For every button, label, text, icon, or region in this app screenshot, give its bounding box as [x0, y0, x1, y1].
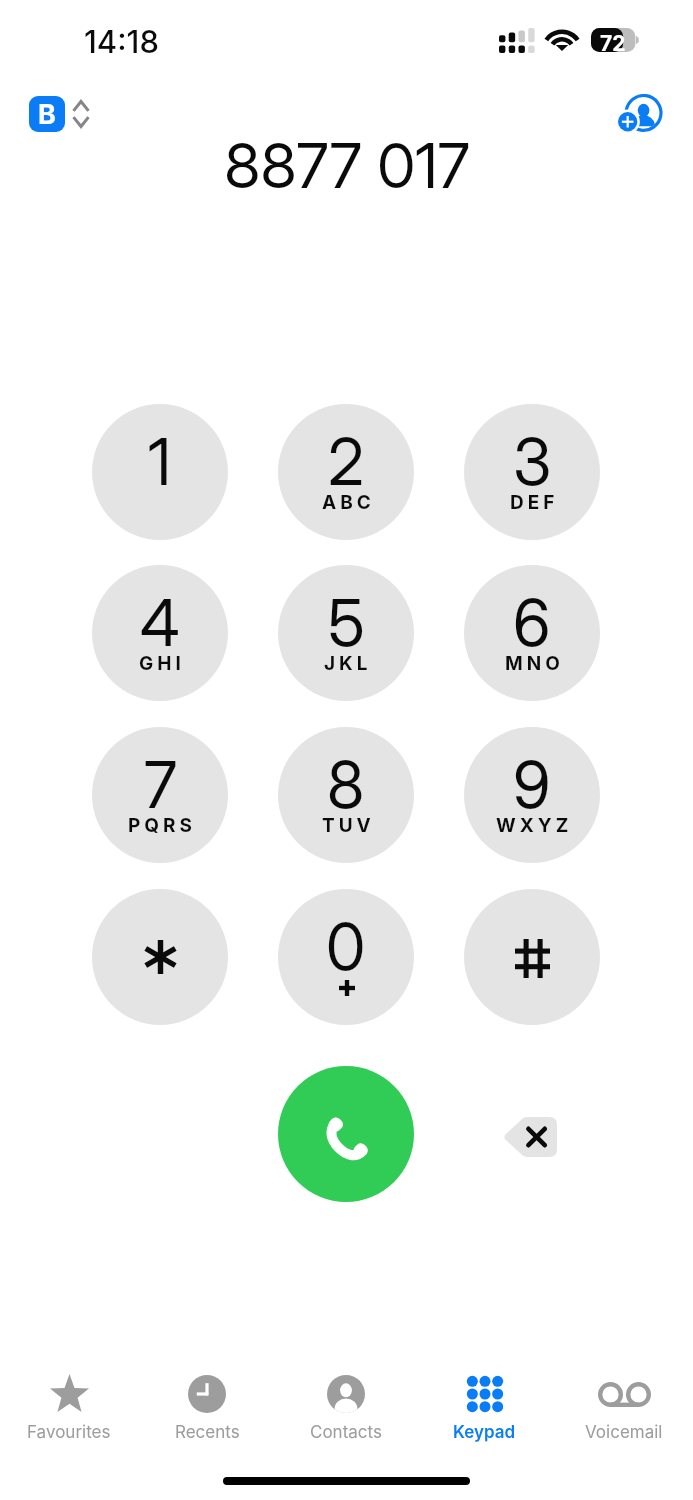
staticText: Recents [175, 1422, 240, 1443]
staticText: 4 [140, 584, 180, 661]
button[interactable]: Delete [504, 1117, 557, 1157]
staticText: Keypad [453, 1422, 516, 1443]
button[interactable]: B [29, 96, 90, 132]
button[interactable]: 8 [278, 727, 414, 863]
staticText: 5 [328, 584, 365, 661]
staticText: 14:18 [84, 23, 159, 61]
button[interactable]: Add contact [618, 94, 661, 137]
staticText: Favourites [27, 1422, 111, 1443]
button[interactable]: 0 [278, 889, 414, 1025]
staticText: DEF [510, 491, 559, 514]
staticText: 3 [513, 423, 552, 500]
button[interactable] [92, 889, 228, 1025]
button[interactable]: 4 [92, 565, 228, 701]
button[interactable]: 7 [92, 727, 228, 863]
staticText: WXYZ [496, 814, 573, 837]
staticText: MNO [505, 652, 564, 675]
staticText: TUV [322, 814, 375, 837]
button[interactable]: Favourites [0, 1360, 138, 1448]
staticText: 6 [513, 584, 551, 661]
staticText: GHI [139, 652, 185, 675]
button[interactable]: Call [278, 1066, 414, 1202]
staticText: 9 [513, 746, 551, 823]
button[interactable]: 6 [464, 565, 600, 701]
button[interactable]: 5 [278, 565, 414, 701]
button[interactable]: Contacts [276, 1360, 415, 1448]
staticText: Contacts [310, 1422, 382, 1443]
button[interactable] [464, 889, 600, 1025]
staticText: B [38, 98, 56, 131]
staticText: Voicemail [585, 1422, 663, 1443]
staticText: PQRS [128, 814, 196, 837]
button[interactable]: 3 [464, 404, 600, 540]
button[interactable]: Recents [138, 1360, 276, 1448]
staticText: 8877 017 [224, 128, 470, 203]
staticText: JKL [324, 652, 372, 675]
button[interactable]: 1 [92, 404, 228, 540]
staticText: 0 [326, 908, 366, 985]
button[interactable]: Voicemail [554, 1360, 693, 1448]
staticText: ABC [322, 491, 375, 514]
button[interactable]: 2 [278, 404, 414, 540]
staticText: 7 [144, 746, 177, 823]
button[interactable]: 9 [464, 727, 600, 863]
staticText: 1 [148, 423, 172, 500]
staticText: 8 [327, 746, 365, 823]
staticText: 72 [600, 31, 626, 56]
staticText: 2 [328, 423, 364, 500]
button[interactable]: Keypad [415, 1360, 554, 1448]
